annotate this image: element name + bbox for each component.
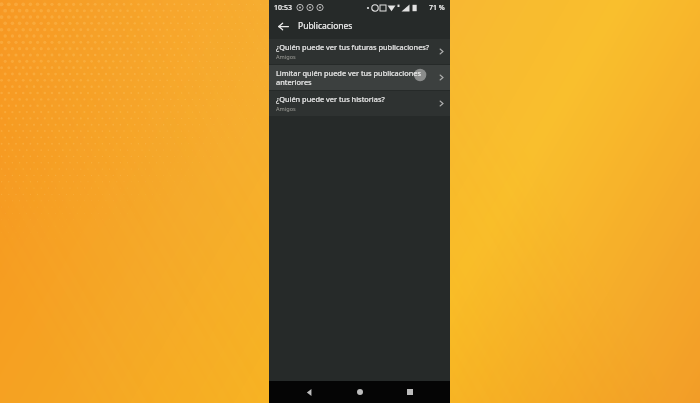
button[interactable]: Back	[299, 382, 319, 402]
staticText: Limitar quién puede ver tus publicacione…	[276, 68, 434, 87]
staticText: ¿Quién puede ver tus futuras publicacion…	[276, 42, 430, 52]
staticText: ¿Quién puede ver tus historias?	[276, 94, 385, 104]
button[interactable]: Back	[275, 18, 292, 35]
button[interactable]: Limitar quién puede ver tus publicacione…	[269, 65, 450, 90]
staticText: Amigos	[276, 53, 296, 61]
staticText: 10:53	[274, 3, 292, 13]
button[interactable]: ¿Quién puede ver tus futuras publicacion…	[269, 39, 450, 64]
staticText: Amigos	[276, 105, 296, 113]
staticText: 71 %	[429, 3, 445, 13]
button[interactable]: Recent apps	[400, 382, 420, 402]
button[interactable]: Home	[350, 382, 370, 402]
staticText: Publicaciones	[298, 20, 353, 32]
button[interactable]: ¿Quién puede ver tus historias?	[269, 91, 450, 116]
